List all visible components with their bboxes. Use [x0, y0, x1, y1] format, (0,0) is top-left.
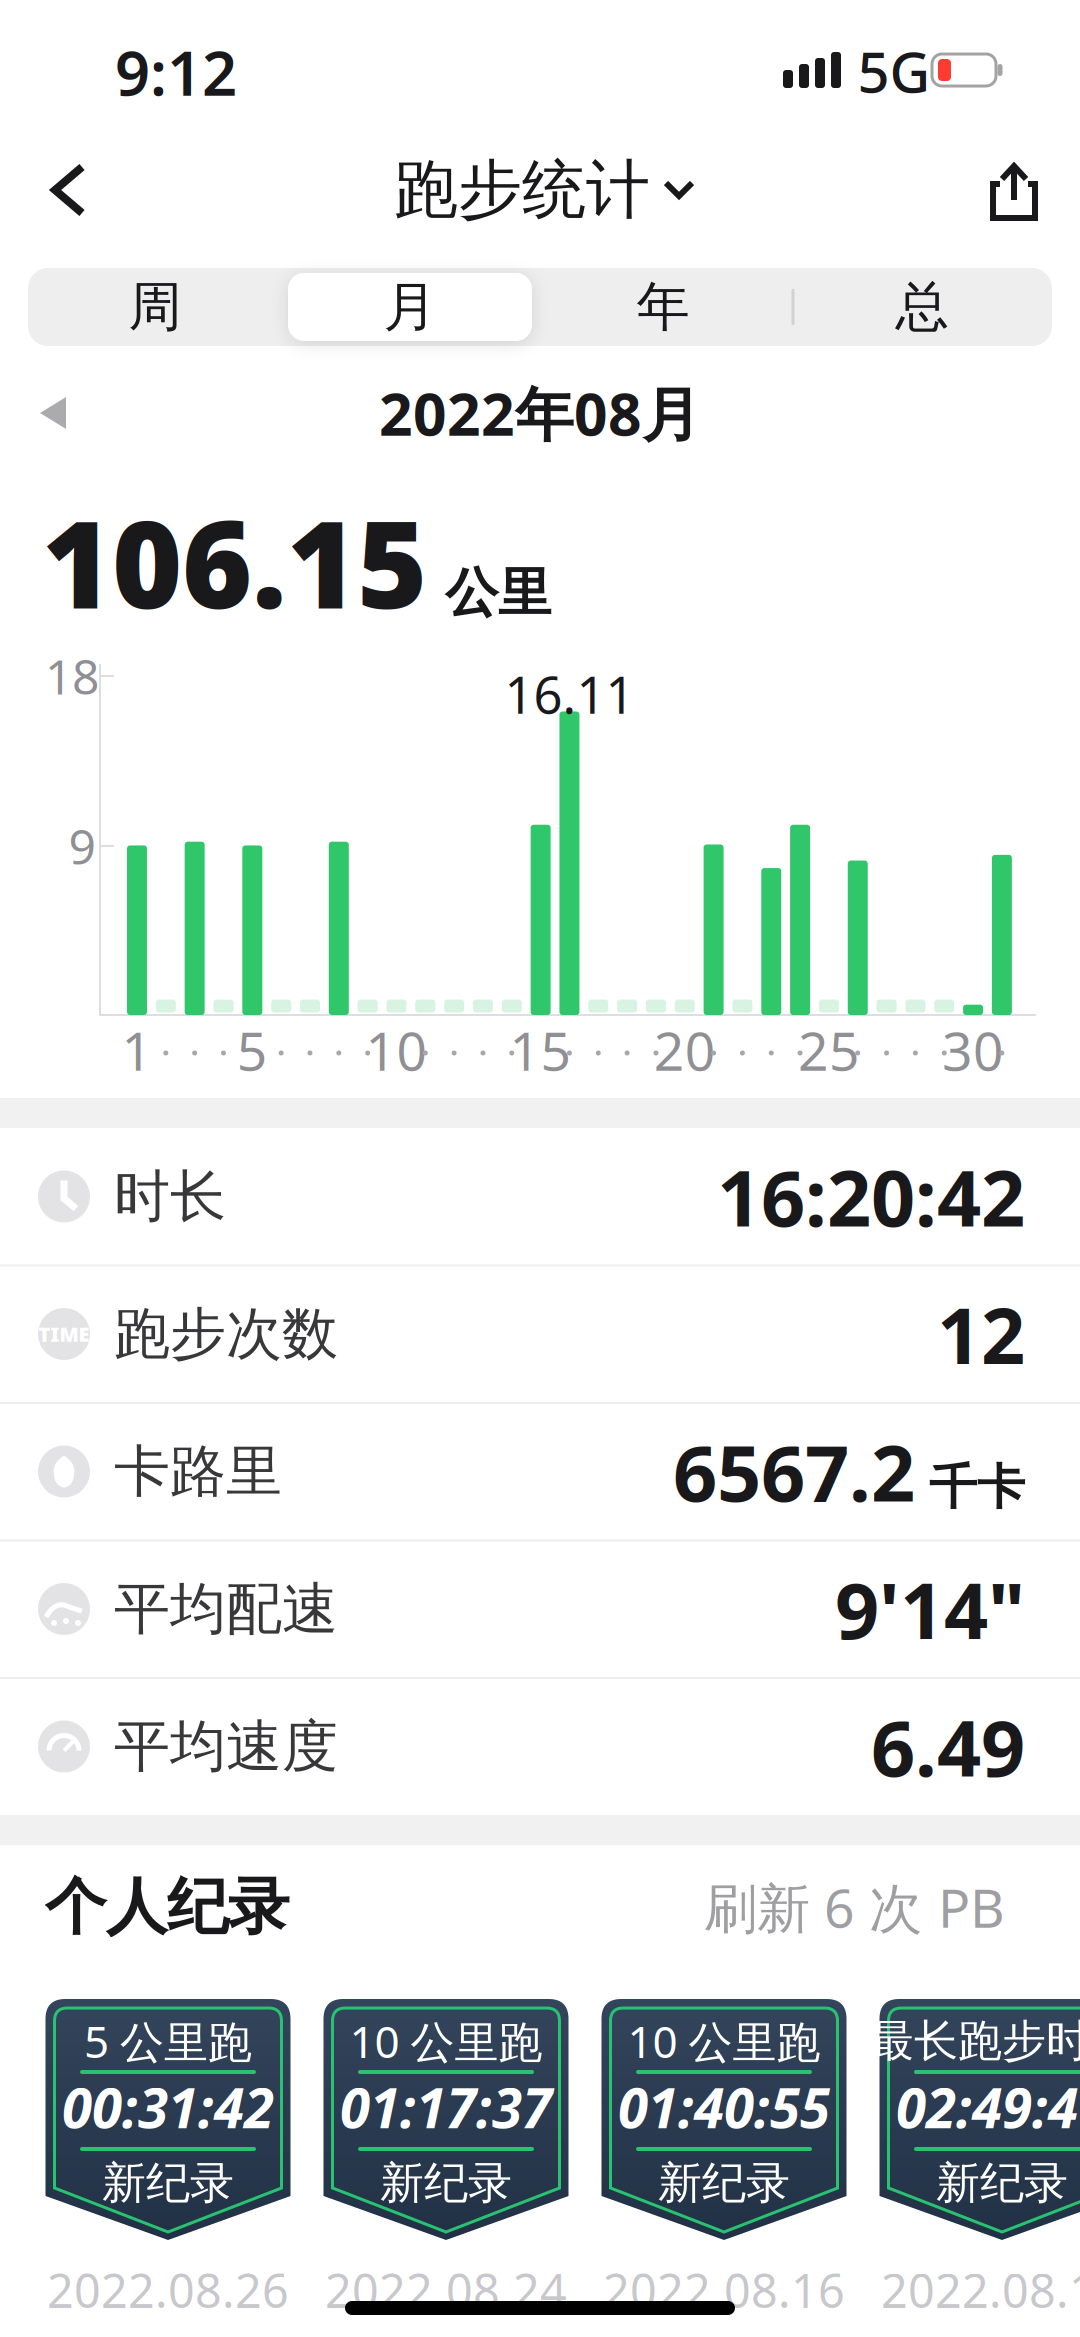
- button[interactable]: 10 公里跑: [323, 1999, 568, 2240]
- staticText: 9:12: [115, 31, 237, 113]
- staticText: 个人纪录: [45, 1869, 289, 1945]
- staticText: 新纪录: [102, 2156, 234, 2210]
- staticText: 6.49: [871, 1695, 1025, 1798]
- staticText: 18: [45, 644, 99, 708]
- staticText: 2022.08.16: [603, 2259, 845, 2321]
- staticText: 时长: [114, 1162, 226, 1231]
- staticText: 新纪录: [658, 2156, 790, 2210]
- staticText: 12: [937, 1283, 1025, 1385]
- staticText: 16.11: [504, 660, 634, 728]
- staticText: 01:40:55: [618, 2071, 830, 2143]
- button[interactable]: Share: [974, 147, 1054, 237]
- button[interactable]: 10 公里跑: [601, 1999, 846, 2240]
- staticText: 30: [942, 1015, 1004, 1085]
- staticText: 平均配速: [114, 1575, 338, 1643]
- staticText: 2022.08.26: [47, 2259, 289, 2321]
- staticText: 刷新 6 次 PB: [704, 1872, 1005, 1942]
- staticText: 年: [636, 274, 689, 340]
- staticText: TIME: [38, 1321, 89, 1347]
- staticText: 106.15: [42, 482, 427, 642]
- staticText: 1: [121, 1015, 152, 1085]
- staticText: 公里: [445, 560, 551, 626]
- button[interactable]: Previous month: [40, 395, 68, 431]
- staticText: 千卡: [929, 1458, 1025, 1517]
- button[interactable]: 最长跑步时间: [879, 1999, 1080, 2240]
- staticText: 9: [68, 814, 95, 878]
- staticText: 新纪录: [380, 2156, 512, 2210]
- staticText: 10 公里跑: [627, 2012, 820, 2070]
- staticText: 2022.08.24: [325, 2259, 567, 2321]
- staticText: 平均速度: [114, 1712, 338, 1781]
- button[interactable]: 总: [807, 272, 1037, 342]
- staticText: 10 公里跑: [349, 2012, 542, 2070]
- staticText: 5 公里跑: [84, 2012, 252, 2070]
- staticText: 9'14": [835, 1558, 1025, 1660]
- button[interactable]: 5 公里跑: [45, 1999, 290, 2240]
- staticText: 总: [895, 274, 948, 340]
- staticText: 月: [383, 274, 436, 340]
- staticText: 01:17:37: [340, 2071, 552, 2143]
- button[interactable]: Back: [30, 145, 110, 235]
- staticText: 10: [365, 1015, 427, 1085]
- staticText: 跑步统计: [394, 151, 650, 229]
- staticText: 2022.08.16: [881, 2259, 1080, 2321]
- staticText: 20: [654, 1015, 716, 1085]
- staticText: 00:31:42: [62, 2071, 274, 2143]
- staticText: 卡路里: [114, 1437, 282, 1506]
- staticText: 新纪录: [936, 2156, 1068, 2210]
- staticText: 15: [510, 1015, 572, 1085]
- staticText: 16:20:42: [717, 1145, 1025, 1248]
- staticText: 5: [237, 1015, 268, 1085]
- staticText: 5G: [857, 34, 930, 108]
- staticText: 最长跑步时间: [870, 2014, 1080, 2068]
- staticText: 跑步次数: [114, 1300, 338, 1368]
- staticText: 2022年08月: [379, 374, 701, 452]
- staticText: 6567.2: [673, 1420, 915, 1523]
- button[interactable]: 周: [40, 272, 270, 342]
- staticText: 02:49:46: [896, 2071, 1080, 2143]
- button[interactable]: 月: [290, 272, 530, 342]
- staticText: 25: [798, 1015, 860, 1085]
- button[interactable]: 跑步统计: [394, 151, 694, 229]
- button[interactable]: 年: [548, 272, 778, 342]
- staticText: 周: [128, 274, 181, 340]
